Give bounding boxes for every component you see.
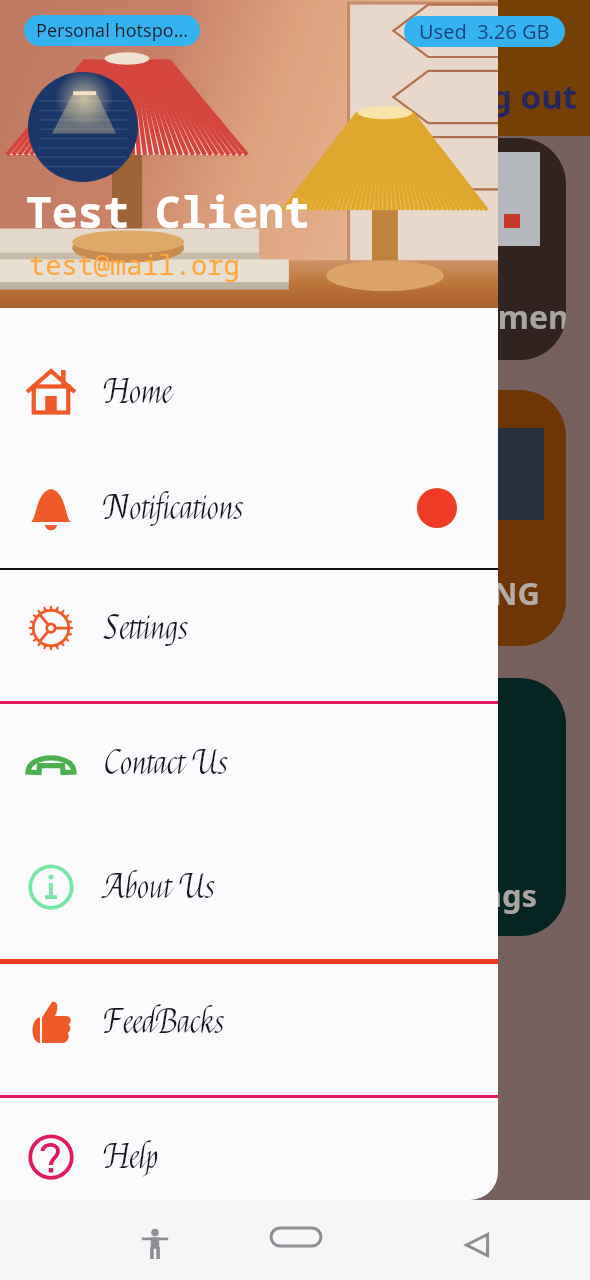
staticText: Used 3.26 GB [419,18,550,45]
staticText: Help [104,1137,159,1178]
staticText: test@mail.org [29,246,240,283]
staticText: Documents [417,295,566,339]
button[interactable]: Accessibility [121,1210,189,1278]
button[interactable]: Help [0,1095,498,1200]
staticText: Test Client [26,182,310,241]
staticText: Home [104,372,172,413]
staticText: Settings [410,874,538,916]
button[interactable]: Home [260,1211,332,1263]
staticText: Contact Us [104,743,229,784]
button[interactable]: Settings [0,566,498,690]
button[interactable]: About Us [0,825,498,949]
staticText: Notifications [104,488,244,529]
button[interactable]: FeedBacks [0,960,498,1084]
staticText: FeedBacks [104,1002,225,1043]
button[interactable]: Back [443,1211,511,1279]
staticText: Log out [452,74,577,119]
staticText: About Us [104,867,216,908]
button[interactable]: Notifications [0,446,498,570]
staticText: Settings [104,608,189,649]
staticText: BOOKING [390,572,540,614]
button[interactable]: Contact Us [0,701,498,825]
staticText: Personal hotspo… [36,18,188,43]
button[interactable]: Home [0,330,498,454]
